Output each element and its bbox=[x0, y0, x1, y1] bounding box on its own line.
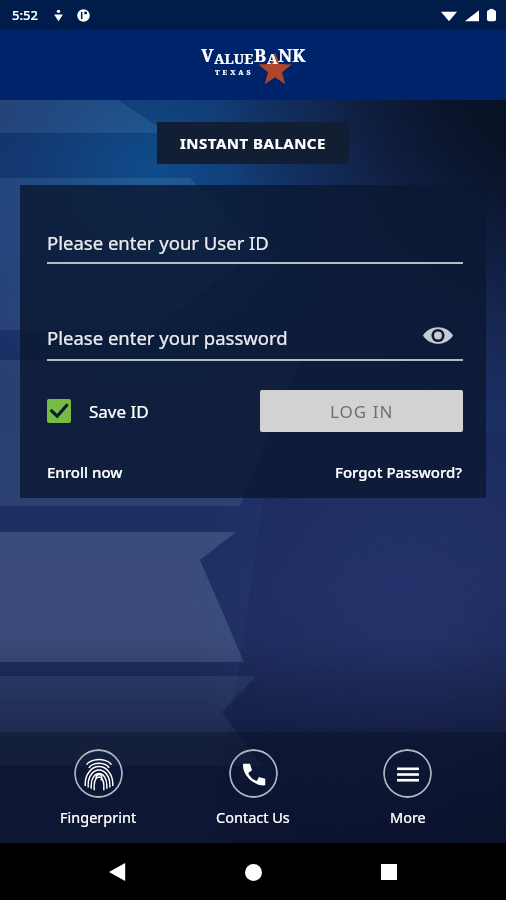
staticText: Fingerprint bbox=[60, 807, 137, 827]
staticText: ALUE bbox=[214, 49, 254, 68]
staticText: More bbox=[390, 807, 426, 827]
staticText: T E X A S bbox=[215, 68, 252, 78]
button[interactable]: Save ID bbox=[47, 399, 149, 423]
button[interactable]: Show password bbox=[420, 320, 456, 350]
button[interactable]: INSTANT BALANCE bbox=[157, 122, 349, 164]
button[interactable]: Fingerprint bbox=[46, 732, 151, 827]
staticText: LOG IN bbox=[330, 400, 394, 423]
staticText: Contact Us bbox=[216, 807, 290, 827]
staticText: V bbox=[201, 43, 214, 68]
button[interactable]: Forgot Password? bbox=[335, 462, 463, 482]
staticText: A bbox=[267, 49, 278, 68]
staticText: B bbox=[254, 43, 267, 68]
staticText: 5:52 bbox=[12, 6, 38, 24]
staticText: INSTANT BALANCE bbox=[180, 133, 326, 153]
staticText: Please enter your password bbox=[47, 325, 288, 350]
staticText: Please enter your User ID bbox=[47, 230, 269, 255]
button[interactable]: More bbox=[369, 732, 446, 827]
staticText: NK bbox=[278, 43, 306, 68]
button[interactable]: LOG IN bbox=[260, 390, 463, 432]
staticText: Save ID bbox=[89, 400, 149, 423]
button[interactable]: Recent apps bbox=[371, 854, 407, 890]
button[interactable]: Home bbox=[235, 854, 271, 890]
button[interactable]: Back bbox=[100, 854, 136, 890]
button[interactable]: Enroll now bbox=[47, 462, 123, 482]
button[interactable]: Contact Us bbox=[202, 732, 304, 827]
